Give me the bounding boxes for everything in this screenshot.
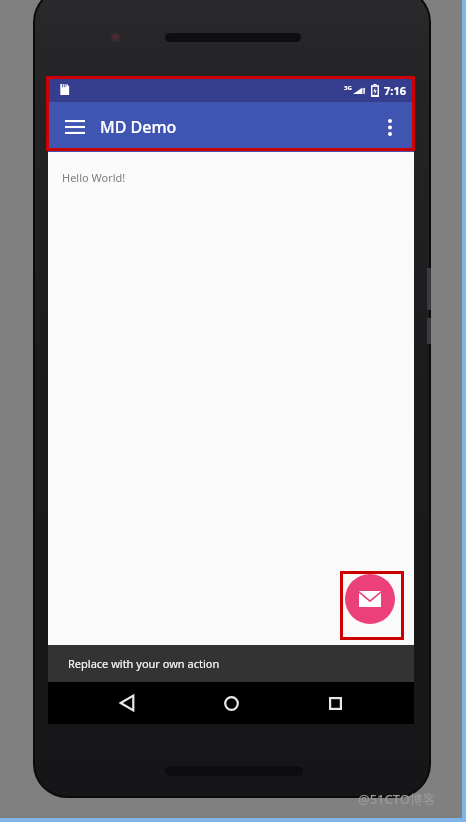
button[interactable]: Send email	[345, 574, 395, 624]
staticText: Hello World!	[62, 170, 126, 185]
button[interactable]: Recent apps	[318, 686, 352, 720]
staticText: Replace with your own action	[68, 656, 220, 671]
button[interactable]: Replace with your own action	[48, 645, 414, 682]
staticText: 7:16	[384, 83, 406, 98]
staticText: !	[363, 85, 366, 96]
button[interactable]: More options	[374, 111, 406, 143]
button[interactable]: Open navigation drawer	[58, 110, 92, 144]
staticText: MD Demo	[100, 116, 177, 138]
staticText: 3G	[344, 84, 352, 92]
button[interactable]: Home	[214, 686, 248, 720]
staticText: @51CTO博客	[358, 790, 437, 808]
button[interactable]: Back	[110, 686, 144, 720]
